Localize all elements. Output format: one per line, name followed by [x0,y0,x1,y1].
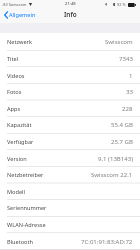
staticText: 228 [122,105,133,113]
button[interactable]: Version [0,150,140,167]
staticText: Apps [7,105,21,113]
staticText: 7C:01:91:83:AD:72 [81,238,133,246]
button[interactable]: Videos [0,67,140,84]
button[interactable]: Netzbetreiber [0,166,140,183]
button[interactable]: Apps [0,100,140,117]
staticText: 21:48 [65,1,76,7]
staticText: Bluetooth [7,238,33,246]
staticText: 25.7 GB [111,138,133,146]
staticText: 33 [126,88,133,96]
button[interactable]: Seriennummer [0,199,140,216]
staticText: 1 [129,72,133,80]
staticText: Swisscom [105,38,133,46]
button[interactable]: WLAN-Adresse [0,216,140,233]
staticText: -83 Swisscom [2,2,27,7]
button[interactable]: Kapazität [0,116,140,133]
staticText: Titel [7,55,19,63]
staticText: 55.4 GB [111,121,133,129]
button[interactable]: Verfügbar [0,133,140,150]
staticText: Swisscom 22.1 [91,171,133,179]
staticText: 7343 [119,55,133,63]
staticText: Netzwerk [7,38,32,46]
staticText: 92 % [117,2,126,7]
staticText: Netzbetreiber [7,171,44,179]
staticText: Videos [7,72,25,80]
button[interactable]: Fotos [0,83,140,100]
button[interactable]: Allgemein [0,9,39,23]
staticText: WLAN-Adresse [7,221,46,229]
staticText: Fotos [7,88,22,96]
button[interactable]: Titel [0,50,140,67]
staticText: Seriennummer [7,204,47,212]
staticText: Version [7,155,27,163]
staticText: Modell [7,188,25,196]
button[interactable]: Bluetooth [0,233,140,250]
staticText: Allgemein [9,11,36,19]
staticText: 9.1 (13B143) [98,155,133,163]
staticText: Kapazität [7,121,32,129]
staticText: Verfügbar [7,138,34,146]
button[interactable]: Netzwerk [0,33,140,50]
button[interactable]: Modell [0,183,140,200]
staticText: Info [64,10,77,19]
